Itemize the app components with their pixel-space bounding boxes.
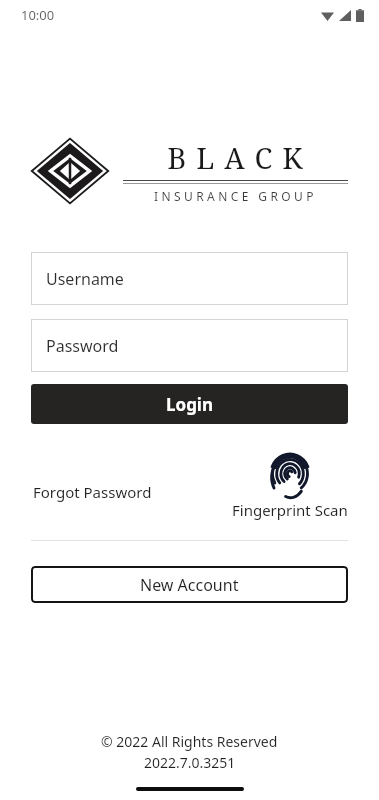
button[interactable]: Password <box>31 319 348 372</box>
button[interactable]: New Account <box>31 566 348 603</box>
staticText: New Account <box>140 574 239 596</box>
staticText: Password <box>46 335 119 357</box>
staticText: Username <box>46 268 124 290</box>
staticText: Login <box>166 393 214 416</box>
button[interactable]: Fingerprint Scan <box>232 442 348 520</box>
staticText: Fingerprint Scan <box>232 500 348 520</box>
button[interactable]: Forgot Password <box>31 476 154 508</box>
staticText: B L A C K <box>123 138 348 177</box>
staticText: INSURANCE GROUP <box>123 188 348 204</box>
button[interactable]: Login <box>31 384 348 424</box>
staticText: 2022.7.0.3251 <box>144 753 236 772</box>
staticText: © 2022 All Rights Reserved <box>101 732 278 751</box>
staticText: Forgot Password <box>33 482 152 502</box>
button[interactable]: Username <box>31 252 348 305</box>
staticText: 10:00 <box>21 6 55 24</box>
